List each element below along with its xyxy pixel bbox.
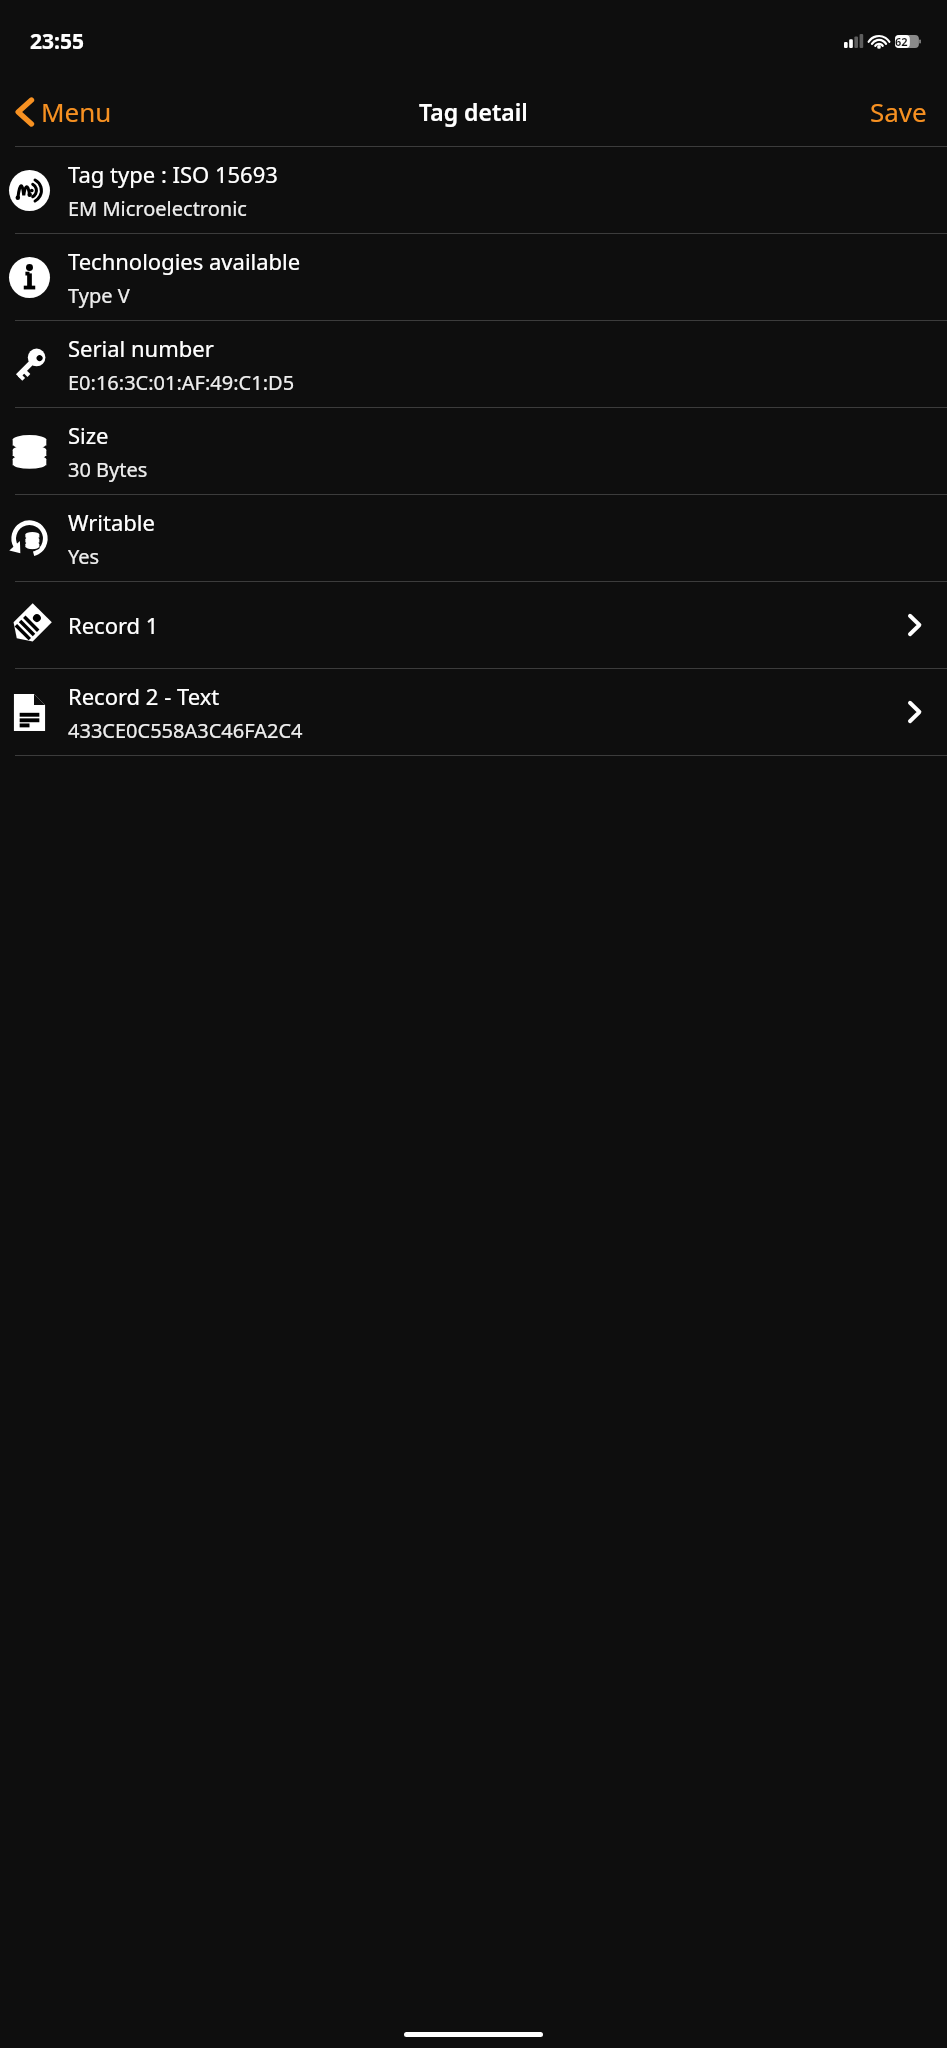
staticText: E0:16:3C:01:AF:49:C1:D5 — [68, 369, 295, 396]
staticText: Save — [870, 94, 927, 129]
button[interactable]: Information — [0, 234, 947, 320]
other: Writable — [9, 518, 50, 559]
button[interactable]: Text record — [0, 669, 947, 755]
staticText: Size — [68, 420, 109, 450]
staticText: Technologies available — [68, 246, 301, 276]
staticText: Serial number — [68, 333, 214, 363]
staticText: Tag detail — [419, 96, 528, 127]
button[interactable]: Save — [850, 86, 947, 137]
staticText: Tag type : ISO 15693 — [68, 159, 278, 189]
staticText: 30 Bytes — [68, 456, 148, 483]
staticText: Record 2 - Text — [68, 681, 220, 711]
other: NFC — [9, 170, 50, 211]
button[interactable]: Size — [0, 408, 947, 494]
staticText: 23:55 — [30, 27, 84, 56]
button[interactable]: NFC — [0, 147, 947, 233]
staticText: Record 1 — [68, 610, 159, 640]
other: Tag record — [9, 605, 50, 646]
other: Information — [9, 257, 50, 298]
button[interactable]: Tag record — [0, 582, 947, 668]
other: Text record — [9, 692, 50, 733]
staticText: EM Microelectronic — [68, 195, 247, 222]
staticText: 433CE0C558A3C46FA2C4 — [68, 717, 303, 744]
staticText: Writable — [68, 507, 155, 537]
button[interactable]: Key — [0, 321, 947, 407]
staticText: Type V — [68, 282, 130, 309]
button[interactable]: Writable — [0, 495, 947, 581]
staticText: Menu — [41, 94, 112, 129]
other: Key — [9, 344, 50, 385]
staticText: 62 — [895, 34, 908, 49]
staticText: Yes — [68, 543, 100, 570]
other: Size — [9, 431, 50, 472]
button[interactable]: Menu — [0, 88, 124, 135]
